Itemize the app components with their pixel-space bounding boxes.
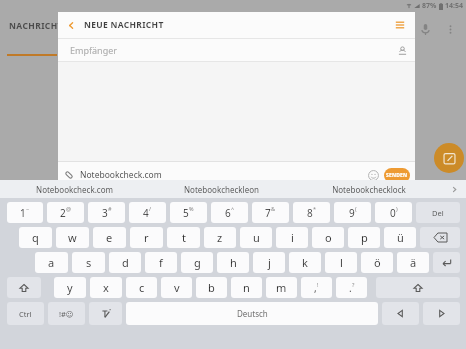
staticText: ü — [397, 230, 404, 245]
button[interactable]: Emoji — [364, 166, 382, 184]
button[interactable]: Attach — [58, 162, 80, 188]
staticText: d — [122, 255, 129, 270]
button[interactable]: More options — [438, 17, 462, 41]
staticText: o — [325, 230, 332, 245]
button[interactable]: Notebookcheck.com — [0, 180, 148, 198]
staticText: 8 — [307, 206, 313, 220]
button[interactable]: y — [54, 277, 86, 298]
button[interactable]: f — [145, 252, 177, 273]
button[interactable]: 0 — [375, 202, 412, 223]
button[interactable]: SENDEN — [384, 168, 410, 183]
button[interactable]: m — [266, 277, 297, 298]
button[interactable]: c — [126, 277, 157, 298]
staticText: Del — [432, 208, 444, 218]
button[interactable]: 5 — [170, 202, 207, 223]
other: Add recipient — [389, 39, 415, 61]
staticText: @ — [66, 205, 71, 212]
button[interactable]: Handwriting — [89, 302, 122, 325]
button[interactable]: b — [196, 277, 227, 298]
button[interactable]: Shift — [7, 277, 41, 298]
button[interactable]: 6 — [211, 202, 248, 223]
staticText: x — [103, 280, 109, 295]
button[interactable]: Cursor left — [382, 302, 419, 325]
button[interactable]: 1 — [7, 202, 43, 223]
button[interactable]: l — [325, 252, 357, 273]
staticText: z — [217, 230, 223, 245]
button[interactable]: n — [231, 277, 262, 298]
staticText: % — [189, 205, 194, 212]
staticText: f — [159, 255, 163, 270]
button[interactable]: e — [93, 227, 126, 248]
button[interactable]: 8 — [293, 202, 330, 223]
staticText: s — [86, 255, 92, 270]
staticText: NEUE NACHRICHT — [84, 19, 164, 31]
staticText: 1 — [20, 206, 26, 220]
button[interactable]: Back — [58, 12, 84, 38]
staticText: u — [253, 230, 260, 245]
button[interactable]: , — [301, 277, 332, 298]
button[interactable]: w — [56, 227, 89, 248]
button[interactable]: . — [336, 277, 367, 298]
button[interactable]: ä — [397, 252, 429, 273]
button[interactable]: Cursor right — [423, 302, 460, 325]
button[interactable]: k — [289, 252, 321, 273]
button[interactable]: 3 — [88, 202, 125, 223]
staticText: 2 — [60, 206, 66, 220]
staticText: Notebookcheck.com — [80, 169, 162, 181]
button[interactable]: 4 — [129, 202, 166, 223]
button[interactable]: i — [276, 227, 308, 248]
staticText: b — [208, 280, 215, 295]
button[interactable]: d — [109, 252, 141, 273]
button[interactable]: Deutsch — [126, 302, 378, 325]
button[interactable]: v — [161, 277, 192, 298]
staticText: # — [108, 205, 112, 212]
staticText: , — [314, 281, 317, 295]
button[interactable]: q — [19, 227, 52, 248]
button[interactable]: 7 — [252, 202, 289, 223]
staticText: * — [313, 205, 317, 212]
button[interactable]: s — [72, 252, 105, 273]
button[interactable]: Del — [416, 202, 460, 223]
button[interactable]: o — [312, 227, 344, 248]
button[interactable]: g — [181, 252, 213, 273]
button[interactable]: a — [35, 252, 68, 273]
button[interactable]: ö — [361, 252, 393, 273]
button[interactable]: Enter — [433, 252, 460, 273]
button[interactable]: Shift — [376, 277, 460, 298]
button[interactable]: Notebookchecklock — [295, 180, 442, 198]
button[interactable]: More suggestions — [442, 180, 466, 198]
staticText: !#☺ — [59, 309, 74, 319]
button[interactable]: Menu — [385, 12, 415, 38]
button[interactable]: z — [204, 227, 236, 248]
staticText: ) — [396, 205, 398, 212]
staticText: n — [243, 280, 250, 295]
staticText: / — [149, 205, 152, 212]
staticText: v — [174, 280, 180, 295]
staticText: ^ — [231, 205, 235, 212]
staticText: t — [182, 230, 186, 245]
button[interactable]: Compose new message — [434, 143, 464, 173]
staticText: ! — [317, 281, 319, 288]
button[interactable]: x — [90, 277, 122, 298]
button[interactable]: ü — [384, 227, 416, 248]
button[interactable]: p — [348, 227, 380, 248]
button[interactable]: !#☺ — [48, 302, 85, 325]
button[interactable]: Empfänger — [58, 39, 415, 61]
button[interactable]: Ctrl — [7, 302, 44, 325]
button[interactable]: j — [253, 252, 285, 273]
button[interactable]: Backspace — [420, 227, 460, 248]
staticText: 14:54 — [445, 1, 463, 11]
staticText: g — [194, 255, 201, 270]
button[interactable]: h — [217, 252, 249, 273]
button[interactable]: r — [130, 227, 163, 248]
button[interactable]: 2 — [47, 202, 84, 223]
button[interactable]: t — [167, 227, 200, 248]
staticText: Empfänger — [70, 44, 117, 56]
staticText: j — [268, 255, 271, 270]
button[interactable]: Notebookcheckleon — [148, 180, 295, 198]
button[interactable]: Voice search — [412, 16, 438, 42]
staticText: 4 — [143, 206, 149, 220]
button[interactable]: u — [240, 227, 272, 248]
staticText: p — [361, 230, 368, 245]
button[interactable]: 9 — [334, 202, 371, 223]
